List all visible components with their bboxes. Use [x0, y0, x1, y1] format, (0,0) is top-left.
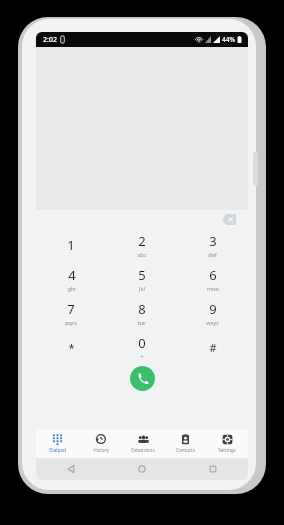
- staticText: 9: [209, 300, 217, 318]
- button[interactable]: Backspace: [222, 214, 236, 225]
- button[interactable]: Call: [130, 366, 155, 391]
- staticText: Settings: [218, 447, 236, 453]
- button[interactable]: 5: [106, 262, 177, 296]
- staticText: Dialpad: [49, 447, 66, 453]
- staticText: 3: [209, 232, 217, 250]
- staticText: wxyz: [206, 319, 219, 326]
- button[interactable]: Recent apps: [177, 458, 248, 480]
- button[interactable]: *: [36, 330, 106, 364]
- staticText: def: [208, 251, 217, 258]
- button[interactable]: 1: [36, 228, 106, 262]
- button[interactable]: Back: [36, 458, 106, 480]
- staticText: 8: [138, 300, 146, 318]
- button[interactable]: Settings: [206, 429, 248, 458]
- button[interactable]: History: [79, 429, 122, 458]
- staticText: History: [93, 447, 109, 453]
- staticText: mno: [207, 285, 219, 292]
- staticText: tuv: [137, 319, 146, 326]
- staticText: jkl: [139, 285, 145, 292]
- button[interactable]: 2: [106, 228, 177, 262]
- button[interactable]: 4: [36, 262, 106, 296]
- button[interactable]: 0: [106, 330, 177, 364]
- staticText: 1: [67, 236, 75, 254]
- staticText: 44%: [222, 35, 235, 44]
- staticText: 6: [209, 266, 217, 284]
- button[interactable]: Home: [106, 458, 177, 480]
- button[interactable]: Extensions: [122, 429, 164, 458]
- staticText: *: [68, 340, 75, 355]
- staticText: 7: [67, 300, 75, 318]
- button[interactable]: 3: [177, 228, 248, 262]
- staticText: abc: [137, 251, 147, 258]
- staticText: pqrs: [65, 319, 77, 326]
- button[interactable]: 8: [106, 296, 177, 330]
- button[interactable]: 7: [36, 296, 106, 330]
- staticText: 2:02: [43, 35, 57, 45]
- button[interactable]: 6: [177, 262, 248, 296]
- staticText: #: [209, 340, 217, 355]
- staticText: 0: [138, 334, 146, 352]
- button[interactable]: 9: [177, 296, 248, 330]
- staticText: Extensions: [131, 447, 155, 453]
- staticText: 5: [138, 266, 146, 284]
- staticText: 4: [68, 266, 76, 284]
- staticText: +: [140, 353, 144, 360]
- staticText: 2: [138, 232, 146, 250]
- staticText: ghi: [67, 285, 76, 292]
- button[interactable]: #: [177, 330, 248, 364]
- staticText: Contacts: [176, 447, 195, 453]
- button[interactable]: Contacts: [164, 429, 206, 458]
- button[interactable]: Dialpad: [36, 429, 79, 458]
